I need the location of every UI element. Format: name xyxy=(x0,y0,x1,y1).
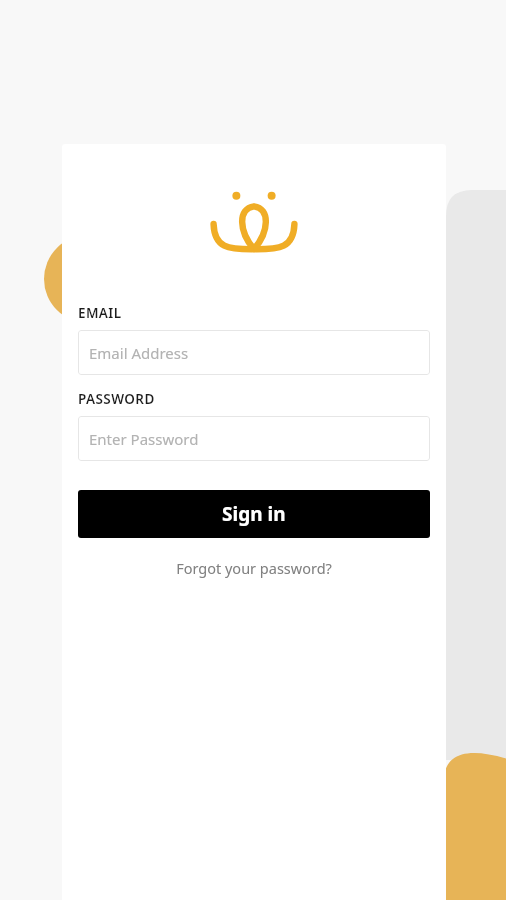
staticText: Forgot your password? xyxy=(176,558,332,578)
other: App logo xyxy=(211,188,297,256)
staticText: Enter Password xyxy=(89,429,199,449)
staticText: PASSWORD xyxy=(78,390,155,408)
button[interactable]: Sign in xyxy=(78,490,430,538)
button[interactable]: Enter Password xyxy=(78,416,430,461)
staticText: Sign in xyxy=(222,501,286,527)
staticText: EMAIL xyxy=(78,304,122,322)
staticText: Email Address xyxy=(89,343,189,363)
button[interactable]: Email Address xyxy=(78,330,430,375)
button[interactable]: Forgot your password? xyxy=(78,552,430,584)
